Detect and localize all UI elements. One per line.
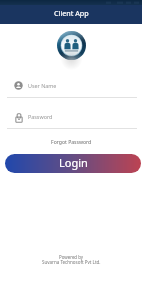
button[interactable]: User Name bbox=[0, 81, 142, 99]
staticText: Client App bbox=[54, 8, 89, 18]
staticText: Login bbox=[59, 155, 88, 170]
staticText: Powered by bbox=[59, 254, 84, 260]
button[interactable]: Login bbox=[5, 154, 141, 173]
button[interactable]: Password bbox=[0, 112, 142, 130]
button[interactable]: Forgot Password bbox=[46, 137, 97, 148]
staticText: User Name bbox=[28, 82, 57, 89]
staticText: Password bbox=[28, 113, 53, 120]
staticText: Suvarna Technosoft Pvt Ltd. bbox=[42, 259, 101, 265]
